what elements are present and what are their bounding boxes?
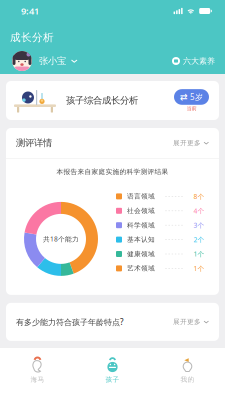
staticText: 2个 [193, 235, 204, 244]
staticText: 艺术领域 [127, 264, 155, 272]
staticText: 当前 [186, 105, 196, 112]
staticText: 展开更多 [173, 318, 201, 326]
staticText: 海马 [30, 375, 44, 384]
staticText: 1个 [193, 250, 204, 258]
button[interactable]: 孩子综合成长分析 [6, 81, 219, 120]
staticText: 5岁 [190, 92, 203, 102]
staticText: 孩子 [105, 375, 119, 384]
staticText: 测评详情 [16, 137, 52, 149]
staticText: 科学领域 [127, 221, 155, 229]
staticText: 共18个能力 [43, 234, 79, 243]
staticText: 4个 [193, 206, 204, 215]
staticText: ⇄ [180, 92, 188, 102]
staticText: 健康领域 [127, 250, 155, 258]
staticText: 语言领域 [127, 192, 155, 200]
staticText: 8个 [193, 192, 204, 201]
staticText: 六大素养 [183, 56, 215, 66]
staticText: 基本认知 [127, 235, 155, 244]
staticText: 本报告来自家庭实施的科学测评结果 [56, 168, 168, 176]
button[interactable]: 我的 [150, 350, 225, 390]
staticText: 成长分析 [10, 31, 54, 44]
button[interactable]: 张小宝 [12, 51, 77, 71]
button[interactable]: 孩子 [75, 350, 150, 390]
staticText: 社会领域 [127, 207, 155, 215]
button[interactable]: 六大素养 [172, 53, 215, 69]
staticText: 3个 [193, 221, 204, 230]
staticText: 我的 [180, 375, 194, 384]
staticText: 有多少能力符合孩子年龄特点? [16, 317, 124, 327]
button[interactable]: 海马 [0, 350, 75, 390]
staticText: 9:41 [21, 5, 39, 17]
button[interactable]: 展开更多 [173, 136, 209, 150]
staticText: 张小宝 [39, 55, 66, 67]
staticText: 孩子综合成长分析 [66, 95, 138, 106]
button[interactable]: 有多少能力符合孩子年龄特点? [6, 303, 219, 341]
button[interactable]: 展开更多 [173, 315, 209, 329]
staticText: 展开更多 [173, 139, 201, 147]
staticText: 1个 [193, 264, 204, 273]
